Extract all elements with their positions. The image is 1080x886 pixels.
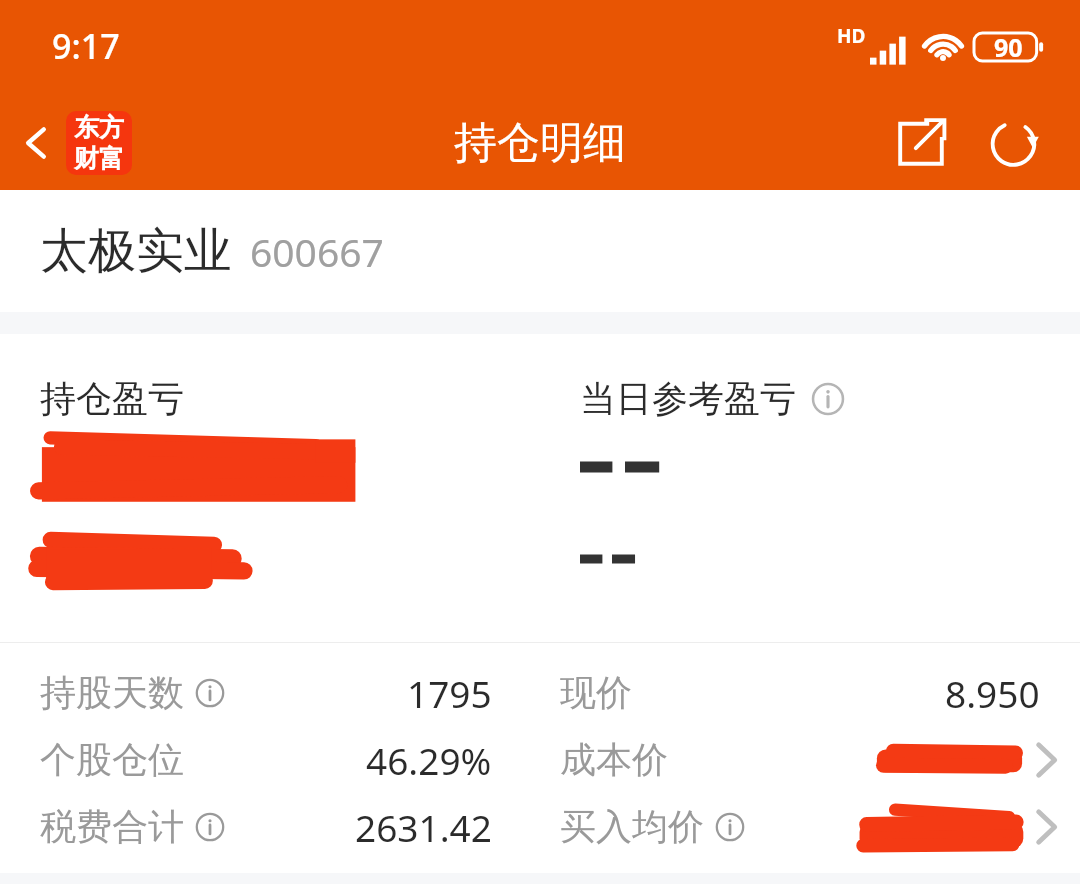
staticText: 2631.42 [355, 802, 492, 852]
staticText: 1795 [407, 668, 492, 718]
staticText: 东方 [74, 112, 124, 143]
button[interactable]: 持股天数 [0, 659, 540, 726]
staticText: 600667 [250, 225, 384, 278]
staticText: 持仓盈亏 [40, 376, 184, 421]
button[interactable]: 太极实业 [0, 190, 1080, 312]
button[interactable]: 现价 [540, 659, 1080, 726]
staticText: 现价 [560, 670, 632, 715]
button[interactable]: 税费合计 [0, 793, 540, 860]
staticText: HD [837, 23, 866, 49]
staticText: 财富 [74, 143, 124, 174]
staticText: 税费合计 [40, 804, 184, 849]
staticText: 个股仓位 [40, 737, 184, 782]
staticText: 90 [994, 30, 1023, 64]
staticText: 买入均价 [560, 804, 704, 849]
button[interactable]: Info [808, 379, 848, 419]
button[interactable]: 成本价 [540, 726, 1080, 793]
button[interactable]: 买入均价 [540, 793, 1080, 860]
staticText: 8.950 [945, 668, 1040, 718]
staticText: 持仓明细 [454, 116, 626, 170]
staticText: 持股天数 [40, 670, 184, 715]
staticText: 46.29% [366, 735, 492, 785]
button[interactable]: East Money [66, 111, 132, 175]
button[interactable]: 个股仓位 [0, 726, 540, 793]
button[interactable]: Share [874, 96, 968, 190]
staticText: 当日参考盈亏 [580, 376, 796, 421]
button[interactable]: Refresh [968, 96, 1062, 190]
staticText: 9:17 [52, 23, 120, 69]
button[interactable]: Back [0, 95, 74, 190]
staticText: 成本价 [560, 737, 668, 782]
staticText: 太极实业 [40, 221, 232, 281]
